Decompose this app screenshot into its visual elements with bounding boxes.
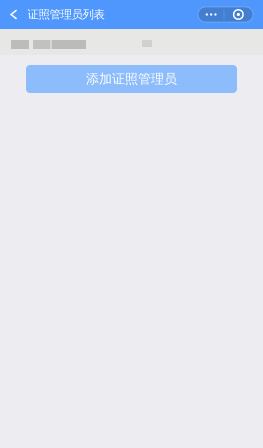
staticText: 证照管理员列表 [28,7,105,22]
button[interactable]: More [198,7,253,22]
staticText: 添加证照管理员 [86,71,177,87]
button[interactable]: Back [0,0,28,29]
button[interactable]: 添加证照管理员 [26,65,237,93]
